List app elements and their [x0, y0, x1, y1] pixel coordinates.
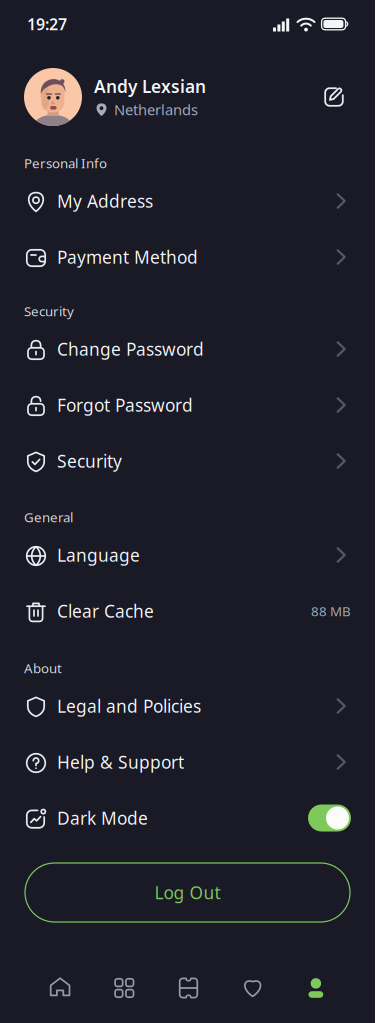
button[interactable]: Payment Method: [0, 229, 375, 285]
button[interactable]: Log Out: [25, 863, 350, 922]
staticText: Help & Support: [57, 750, 184, 773]
staticText: Dark Mode: [57, 806, 148, 829]
staticText: Legal and Policies: [57, 694, 201, 717]
button[interactable]: Categories: [91, 964, 155, 1010]
staticText: 88 MB: [311, 602, 351, 620]
staticText: Log Out: [154, 881, 220, 904]
staticText: Language: [57, 543, 140, 566]
staticText: Change Password: [57, 337, 204, 360]
button[interactable]: Tickets: [155, 964, 220, 1010]
staticText: Security: [57, 449, 122, 472]
button[interactable]: Language: [0, 527, 375, 583]
staticText: My Address: [57, 189, 153, 212]
staticText: 19:27: [27, 13, 67, 35]
button[interactable]: Dark Mode: [308, 804, 351, 831]
button[interactable]: Help & Support: [0, 734, 375, 790]
button[interactable]: Forgot Password: [0, 377, 375, 433]
button[interactable]: Edit profile: [317, 80, 351, 114]
button[interactable]: Profile: [284, 964, 348, 1010]
staticText: Clear Cache: [57, 599, 154, 622]
staticText: About: [24, 659, 62, 677]
button[interactable]: Favourites: [220, 964, 284, 1010]
button[interactable]: Home: [27, 964, 91, 1010]
staticText: Andy Lexsian: [94, 75, 206, 98]
button[interactable]: Clear Cache: [0, 583, 375, 639]
button[interactable]: Security: [0, 433, 375, 489]
staticText: Payment Method: [57, 245, 198, 268]
button[interactable]: Legal and Policies: [0, 678, 375, 734]
staticText: Personal Info: [24, 154, 107, 172]
button[interactable]: Change Password: [0, 321, 375, 377]
staticText: General: [24, 508, 73, 526]
button[interactable]: My Address: [0, 173, 375, 229]
staticText: Security: [24, 302, 74, 320]
staticText: Forgot Password: [57, 393, 193, 416]
staticText: Netherlands: [114, 100, 198, 119]
